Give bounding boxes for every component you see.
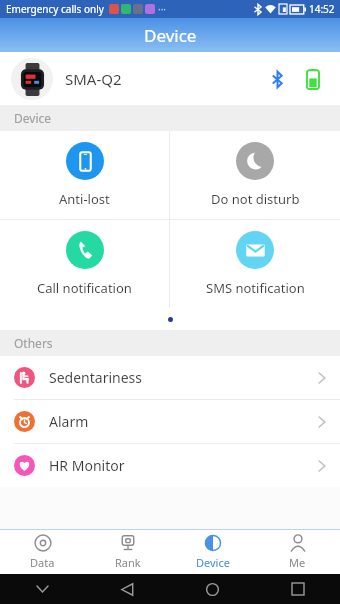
button[interactable]: Hide bbox=[0, 574, 85, 604]
button[interactable]: Data bbox=[0, 530, 85, 574]
button[interactable]: Alarm bbox=[0, 400, 340, 443]
button[interactable]: Me bbox=[255, 530, 340, 574]
staticText: Sedentariness bbox=[49, 368, 143, 387]
button[interactable]: Sedentariness bbox=[0, 356, 340, 399]
button[interactable]: Battery level bbox=[299, 65, 327, 93]
button[interactable]: Anti-lost bbox=[0, 131, 169, 219]
staticText: Call notification bbox=[37, 279, 132, 297]
button[interactable]: Home bbox=[170, 574, 255, 604]
button[interactable]: SMS notification bbox=[170, 220, 340, 308]
staticText: Emergency calls only bbox=[6, 2, 104, 16]
button[interactable]: Recent apps bbox=[255, 574, 340, 604]
staticText: Data bbox=[30, 555, 55, 570]
staticText: 14:52 bbox=[309, 2, 335, 16]
button[interactable]: HR Monitor bbox=[0, 444, 340, 487]
staticText: Alarm bbox=[49, 412, 89, 431]
button[interactable]: Rank bbox=[85, 530, 170, 574]
staticText: Device bbox=[14, 110, 52, 126]
staticText: Others bbox=[14, 335, 53, 351]
staticText: HR Monitor bbox=[49, 456, 125, 475]
staticText: SMA-Q2 bbox=[65, 69, 122, 89]
staticText: ··· bbox=[158, 2, 167, 16]
staticText: Me bbox=[289, 555, 306, 570]
button[interactable]: Call notification bbox=[0, 220, 169, 308]
staticText: Anti-lost bbox=[59, 190, 110, 208]
button[interactable]: SMA-Q2 bbox=[0, 52, 340, 105]
button[interactable]: Device bbox=[170, 530, 255, 574]
staticText: Rank bbox=[115, 555, 141, 570]
button[interactable]: Do not disturb bbox=[170, 131, 340, 219]
staticText: Do not disturb bbox=[211, 190, 300, 208]
staticText: Device bbox=[144, 24, 197, 47]
staticText: SMS notification bbox=[206, 279, 305, 297]
button[interactable]: Back bbox=[85, 574, 170, 604]
staticText: Device bbox=[196, 555, 230, 570]
button[interactable]: Bluetooth connected bbox=[263, 65, 291, 93]
